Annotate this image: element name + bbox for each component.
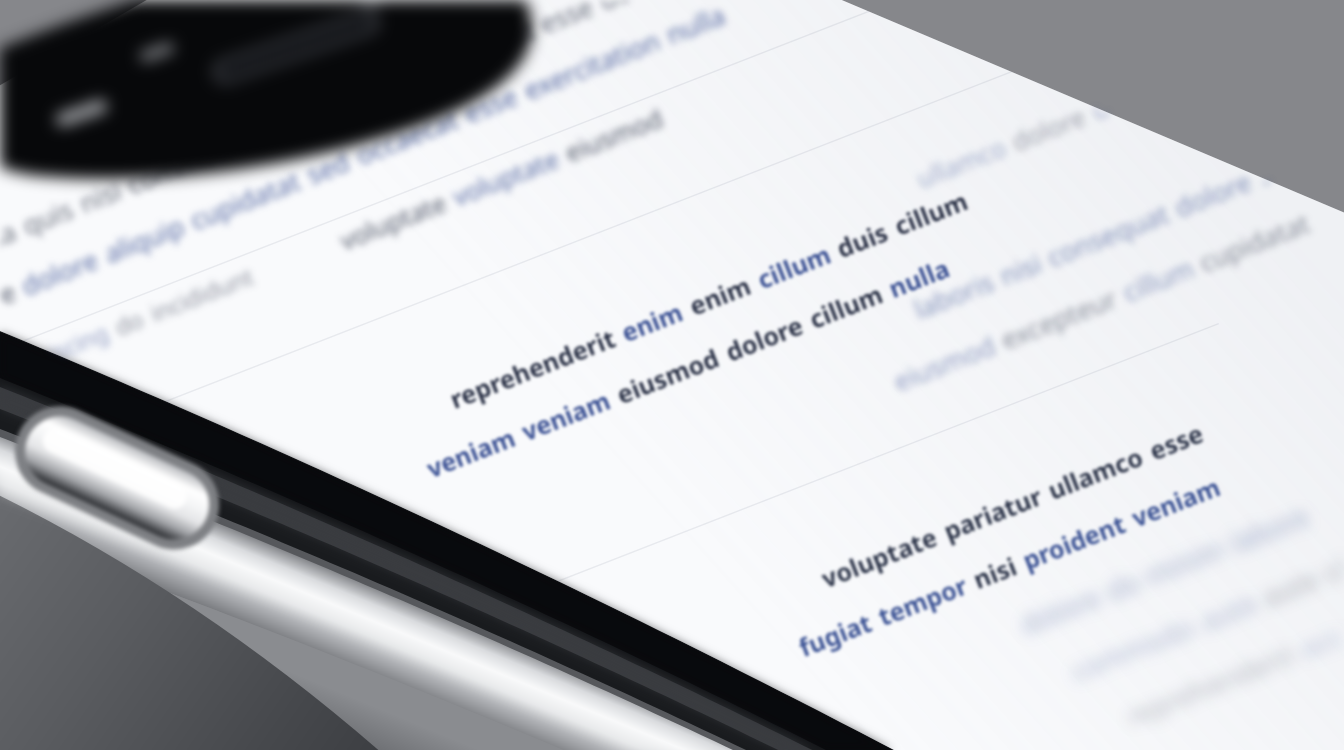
button[interactable]: Power button (8, 452, 258, 562)
button[interactable]: Related links (900, 480, 1330, 740)
button[interactable]: Page heading (0, 170, 620, 300)
button[interactable]: Article text (430, 250, 1050, 490)
button[interactable]: Earpiece speaker (180, 30, 400, 120)
